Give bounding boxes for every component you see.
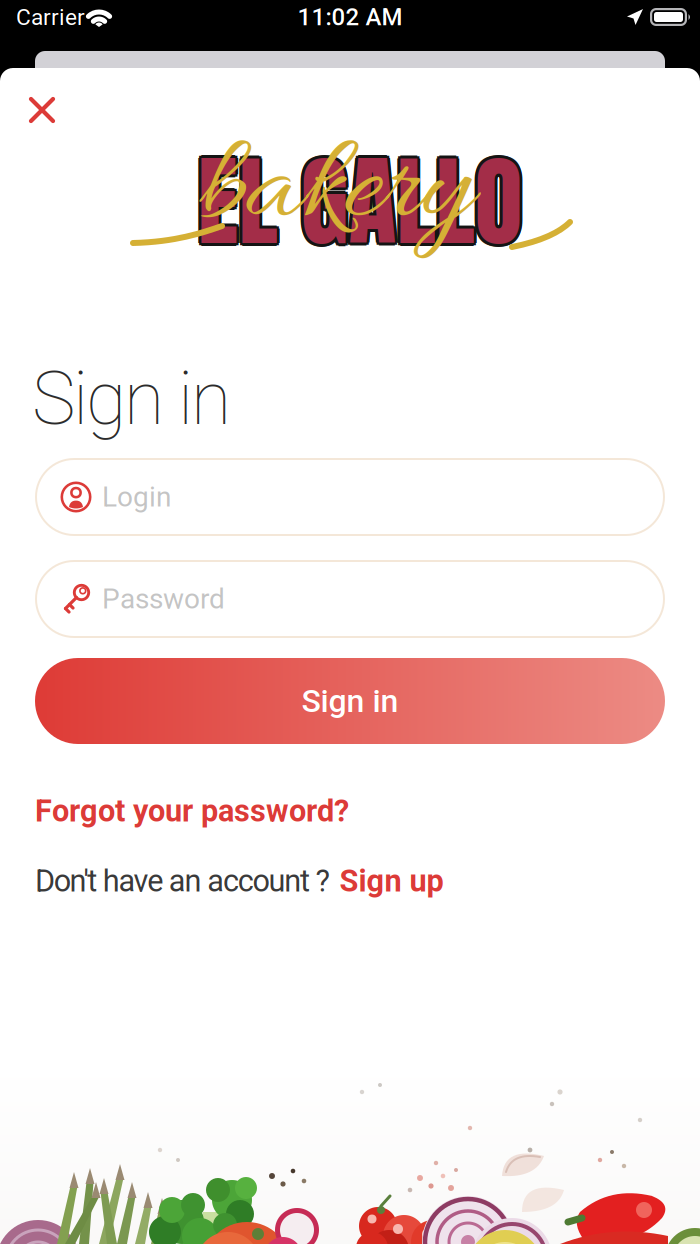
staticText: EL GALLO xyxy=(195,129,520,278)
button[interactable]: Login xyxy=(35,458,665,536)
staticText: Don't have an account ? xyxy=(35,863,330,899)
staticText: 11:02 AM xyxy=(297,3,402,31)
staticText: EL GALLO xyxy=(197,124,522,272)
staticText: Login xyxy=(102,481,171,513)
staticText: Sign up xyxy=(340,863,444,899)
button[interactable]: Forgot your password? xyxy=(35,793,349,829)
staticText: EL GALLO xyxy=(197,127,522,275)
button[interactable]: Sign up xyxy=(340,863,444,899)
staticText: EL GALLO xyxy=(194,127,519,275)
button[interactable]: Close xyxy=(20,88,64,132)
button[interactable]: Sign in xyxy=(35,658,665,744)
staticText: Carrier xyxy=(16,4,85,31)
staticText: EL GALLO xyxy=(197,130,522,278)
staticText: Forgot your password? xyxy=(35,793,349,829)
staticText: EL GALLO xyxy=(200,125,525,273)
staticText: Sign in xyxy=(32,356,231,442)
button[interactable]: Password xyxy=(35,560,665,638)
staticText: EL GALLO xyxy=(195,125,520,273)
staticText: EL GALLO xyxy=(200,127,525,275)
staticText: bakery xyxy=(198,115,472,268)
staticText: Sign in xyxy=(301,682,398,720)
staticText: Password xyxy=(102,583,225,615)
staticText: EL GALLO xyxy=(200,129,525,278)
